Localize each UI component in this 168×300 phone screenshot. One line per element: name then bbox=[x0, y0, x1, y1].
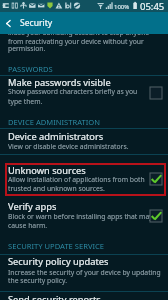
staticText: PASSWORDS bbox=[8, 64, 53, 74]
staticText: type them. bbox=[8, 97, 43, 106]
button[interactable]: Disabled checkbox bbox=[150, 87, 162, 99]
staticText: 100% bbox=[114, 3, 130, 11]
staticText: Send security reports bbox=[8, 293, 101, 300]
staticText: Security policy updates bbox=[8, 255, 109, 268]
staticText: View or disable device administrators. bbox=[8, 142, 129, 151]
button[interactable]: Navigate up bbox=[0, 12, 16, 34]
staticText: from reactivating your device without yo… bbox=[8, 37, 144, 46]
staticText: Increase the security of your device by … bbox=[8, 268, 161, 277]
staticText: DEVICE ADMINISTRATION bbox=[8, 117, 101, 127]
staticText: Block or warn before installing apps tha… bbox=[8, 212, 153, 221]
button[interactable]: Enabled checkbox bbox=[150, 210, 162, 222]
staticText: SECURITY UPDATE SERVICE bbox=[8, 241, 105, 251]
staticText: Show password characters briefly as you bbox=[8, 87, 138, 96]
staticText: Security bbox=[20, 17, 53, 29]
staticText: cause harm. bbox=[8, 221, 48, 230]
staticText: trusted and unknown sources. bbox=[8, 184, 105, 193]
staticText: the security policy. bbox=[8, 276, 68, 285]
staticText: Allow installation of applications from … bbox=[8, 175, 145, 184]
staticText: Unknown sources bbox=[8, 164, 86, 177]
staticText: ...use your Samsung account to stop anyo… bbox=[8, 28, 150, 37]
staticText: 05:45 bbox=[140, 0, 165, 12]
staticText: Verify apps bbox=[8, 200, 57, 213]
staticText: permission. bbox=[8, 44, 46, 53]
button[interactable]: Enabled checkbox bbox=[150, 173, 162, 185]
staticText: Make passwords visible bbox=[8, 76, 111, 89]
staticText: Device administrators bbox=[8, 130, 104, 143]
